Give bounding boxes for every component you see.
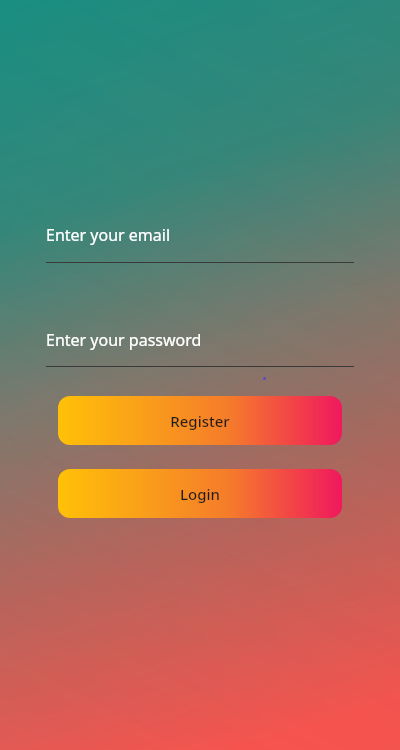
button[interactable]: Login (58, 469, 342, 518)
staticText: Enter your password (46, 329, 202, 351)
button[interactable]: Register (58, 396, 342, 445)
button[interactable]: Enter your email (46, 224, 354, 263)
staticText: Register (170, 411, 230, 431)
staticText: Login (180, 484, 220, 504)
button[interactable]: Enter your password (46, 329, 354, 367)
staticText: Enter your email (46, 224, 171, 246)
